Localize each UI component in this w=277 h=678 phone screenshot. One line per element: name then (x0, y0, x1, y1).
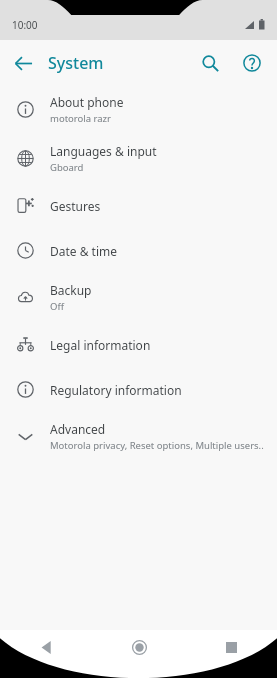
button[interactable]: Back (6, 46, 40, 80)
button[interactable]: Regulatory information (0, 367, 277, 412)
button[interactable]: About phone (0, 85, 277, 134)
staticText: 10:00 (12, 18, 38, 32)
button[interactable]: Backup (0, 273, 277, 322)
button[interactable]: Back (0, 630, 93, 664)
button[interactable]: Help (235, 46, 269, 80)
staticText: Off (50, 300, 64, 313)
button[interactable]: Legal information (0, 322, 277, 367)
staticText: Backup (50, 282, 92, 298)
button[interactable]: Advanced (0, 412, 277, 461)
staticText: Gboard (50, 161, 84, 174)
button[interactable]: Gestures (0, 183, 277, 228)
button[interactable]: Search (193, 46, 227, 80)
button[interactable]: Home (93, 630, 185, 664)
button[interactable]: Date & time (0, 228, 277, 273)
staticText: System (48, 52, 104, 74)
staticText: Advanced (50, 421, 106, 437)
staticText: About phone (50, 94, 124, 110)
staticText: Languages & input (50, 143, 157, 159)
staticText: motorola razr (50, 112, 111, 125)
staticText: Motorola privacy, Reset options, Multipl… (50, 439, 264, 452)
staticText: Regulatory information (50, 382, 182, 398)
button[interactable]: Recent apps (185, 630, 277, 664)
staticText: Legal information (50, 337, 151, 353)
staticText: Gestures (50, 198, 101, 214)
button[interactable]: Languages & input (0, 134, 277, 183)
staticText: Date & time (50, 243, 118, 259)
